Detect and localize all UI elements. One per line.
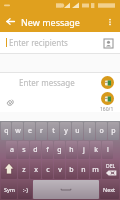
button[interactable]: p xyxy=(108,122,119,140)
button[interactable]: Next xyxy=(100,180,119,199)
button[interactable]: x xyxy=(30,160,41,179)
button[interactable]: m xyxy=(90,160,101,179)
button[interactable]: w xyxy=(12,122,23,140)
button[interactable]: v xyxy=(54,160,65,179)
staticText: o xyxy=(99,126,104,136)
staticText: p xyxy=(111,126,116,136)
button[interactable]: e xyxy=(24,122,35,140)
staticText: a xyxy=(10,145,14,155)
button[interactable]: More options xyxy=(99,11,120,32)
button[interactable]: c xyxy=(42,160,53,179)
staticText: Enter message xyxy=(19,77,75,88)
button[interactable]: q xyxy=(1,122,11,140)
button[interactable]: z xyxy=(18,160,29,179)
button[interactable]: n xyxy=(78,160,89,179)
staticText: x xyxy=(34,165,38,175)
staticText: :-) xyxy=(23,186,28,193)
button[interactable]: t xyxy=(48,122,59,140)
staticText: n xyxy=(81,165,86,175)
button[interactable]: k xyxy=(90,141,101,159)
staticText: h xyxy=(69,145,74,155)
staticText: 160/1 xyxy=(100,106,114,112)
button[interactable]: l xyxy=(102,141,113,159)
staticText: g xyxy=(57,145,62,155)
button[interactable]: Add contact xyxy=(99,34,117,52)
button[interactable]: Emoji xyxy=(18,180,32,199)
staticText: e xyxy=(28,126,32,136)
button[interactable]: r xyxy=(36,122,47,140)
button[interactable]: j xyxy=(78,141,89,159)
button[interactable]: g xyxy=(54,141,65,159)
staticText: y xyxy=(64,126,68,136)
staticText: s xyxy=(22,145,26,155)
button[interactable]: h xyxy=(66,141,77,159)
staticText: New message xyxy=(21,16,80,28)
button[interactable]: Attach xyxy=(0,92,20,112)
button[interactable]: s xyxy=(18,141,29,159)
staticText: u xyxy=(75,126,80,136)
staticText: l xyxy=(107,145,109,155)
button[interactable]: a xyxy=(6,141,17,159)
staticText: i xyxy=(89,126,91,136)
staticText: q xyxy=(4,126,9,136)
button[interactable]: Back xyxy=(0,11,21,32)
staticText: t xyxy=(52,126,55,136)
button[interactable]: o xyxy=(96,122,107,140)
button[interactable]: Delete xyxy=(102,160,119,179)
button[interactable]: Send xyxy=(101,92,114,105)
button[interactable]: y xyxy=(60,122,71,140)
button[interactable]: Sym xyxy=(1,180,17,199)
staticText: Enter recipients xyxy=(9,37,68,48)
staticText: f xyxy=(46,145,49,155)
staticText: w xyxy=(15,126,21,136)
staticText: j xyxy=(83,145,85,155)
button[interactable]: Space xyxy=(33,180,99,199)
staticText: DEL xyxy=(106,163,116,170)
button[interactable]: f xyxy=(42,141,53,159)
button[interactable]: b xyxy=(66,160,77,179)
staticText: d xyxy=(33,145,38,155)
staticText: v xyxy=(58,165,62,175)
button[interactable]: Enter recipients xyxy=(0,32,120,53)
staticText: c xyxy=(46,165,50,175)
staticText: Sym xyxy=(4,186,15,193)
button[interactable]: i xyxy=(84,122,95,140)
button[interactable]: d xyxy=(30,141,41,159)
staticText: m xyxy=(92,165,99,175)
staticText: Next xyxy=(103,186,116,193)
button[interactable]: Shift xyxy=(1,160,17,179)
staticText: k xyxy=(94,145,98,155)
staticText: r xyxy=(40,126,43,136)
button[interactable]: u xyxy=(72,122,83,140)
button[interactable]: Enter message xyxy=(0,73,94,92)
staticText: b xyxy=(69,165,74,175)
staticText: z xyxy=(22,165,26,175)
button[interactable]: Send message xyxy=(101,76,114,89)
